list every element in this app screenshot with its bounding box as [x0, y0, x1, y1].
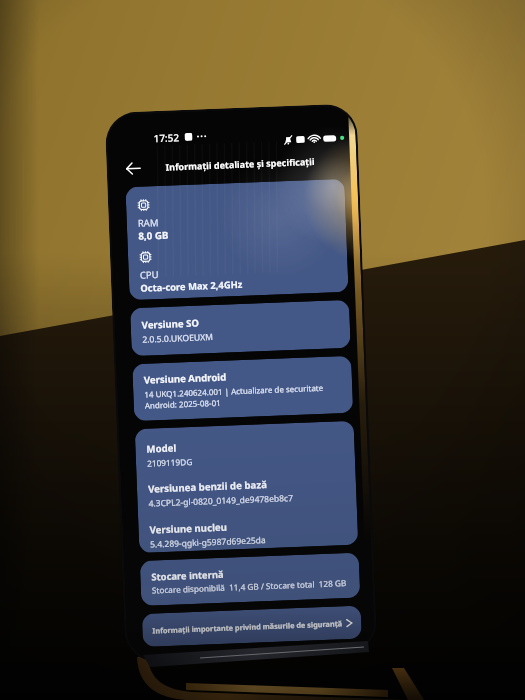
- staticText: Stocare internă: [151, 568, 224, 584]
- staticText: Android: 2025-08-01: [145, 397, 221, 411]
- button[interactable]: Versiune SO: [130, 300, 351, 356]
- staticText: Informații importante privind măsurile d…: [152, 618, 342, 636]
- button[interactable]: Versiune Android: [132, 356, 353, 421]
- staticText: 2109119DG: [147, 456, 193, 469]
- staticText: Versiune Android: [144, 370, 227, 387]
- staticText: Model: [146, 441, 177, 456]
- staticText: CPU: [139, 268, 159, 282]
- staticText: 5.4.289-qgki-g5987d69e25da: [150, 534, 266, 551]
- staticText: 8,0 GB: [138, 229, 169, 243]
- button[interactable]: Informații importante privind măsurile d…: [142, 606, 362, 647]
- staticText: 2.0.5.0.UKOEUXM: [142, 331, 213, 346]
- staticText: Octa-core Max 2,4GHz: [140, 278, 243, 295]
- staticText: RAM: [137, 216, 159, 230]
- staticText: Informații detaliate și specificații: [165, 155, 315, 173]
- staticText: Stocare disponibilă 11,4 GB / Stocare to…: [152, 577, 347, 596]
- staticText: Versiune SO: [141, 316, 200, 332]
- staticText: 4.3CPL2-gl-0820_0149_de9478eb8c7: [148, 492, 294, 510]
- button[interactable]: RAM: [125, 179, 349, 300]
- button[interactable]: Model: [135, 421, 358, 553]
- staticText: 14 UKQ1.240624.001 | Actualizare de secu…: [144, 382, 323, 400]
- button[interactable]: Stocare internă: [140, 553, 360, 606]
- staticText: Versiunea benzii de bază: [148, 478, 267, 496]
- staticText: Versiune nucleu: [149, 521, 228, 537]
- button[interactable]: Back: [120, 156, 145, 179]
- staticText: 17:52: [153, 130, 180, 145]
